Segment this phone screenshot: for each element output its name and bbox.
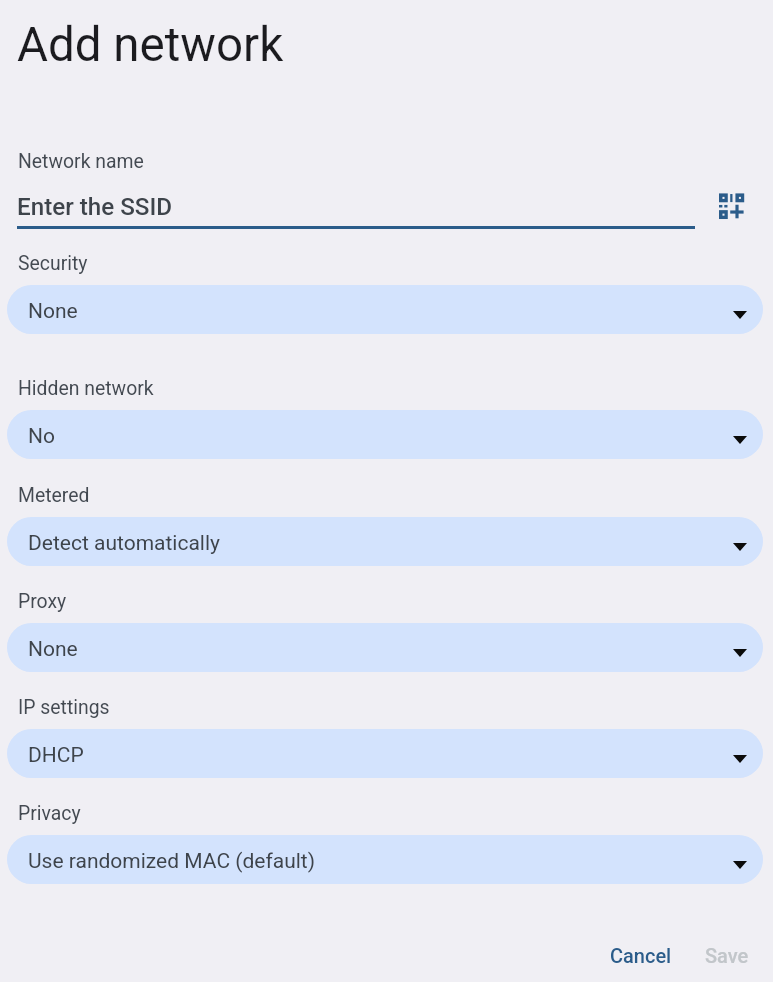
- staticText: Hidden network: [18, 377, 154, 400]
- button[interactable]: None: [7, 623, 763, 672]
- button[interactable]: Cancel: [596, 931, 685, 979]
- button[interactable]: Scan QR code: [707, 181, 755, 230]
- button[interactable]: No: [7, 410, 763, 459]
- staticText: Use randomized MAC (default): [28, 849, 316, 874]
- staticText: No: [28, 424, 55, 449]
- staticText: Security: [18, 252, 88, 275]
- staticText: Detect automatically: [28, 531, 221, 556]
- staticText: None: [28, 299, 78, 324]
- staticText: Network name: [18, 150, 144, 173]
- button[interactable]: None: [7, 285, 763, 334]
- staticText: Privacy: [18, 802, 81, 825]
- button[interactable]: Use randomized MAC (default): [7, 835, 763, 884]
- button[interactable]: DHCP: [7, 729, 763, 778]
- staticText: Enter the SSID: [17, 193, 173, 221]
- button[interactable]: Detect automatically: [7, 517, 763, 566]
- staticText: Add network: [17, 17, 284, 73]
- staticText: IP settings: [18, 696, 110, 719]
- staticText: Save: [705, 944, 749, 967]
- staticText: Cancel: [610, 944, 672, 967]
- staticText: Metered: [18, 484, 90, 507]
- staticText: DHCP: [28, 743, 84, 768]
- staticText: Proxy: [18, 590, 67, 613]
- button[interactable]: Save: [690, 931, 763, 979]
- button[interactable]: Enter the SSID: [17, 181, 695, 229]
- staticText: None: [28, 637, 78, 662]
